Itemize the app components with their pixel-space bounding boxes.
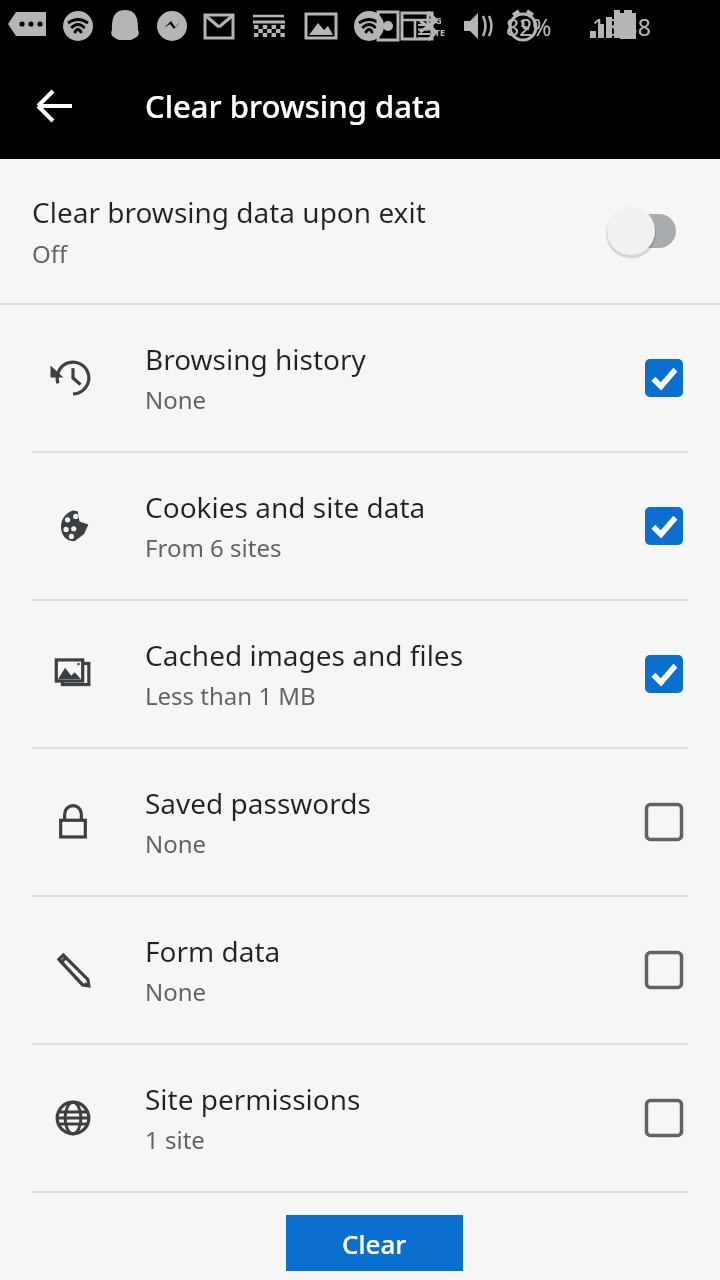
button[interactable]: Site permissions: [0, 1045, 720, 1191]
staticText: None: [145, 827, 207, 860]
staticText: Site permissions: [145, 1080, 361, 1118]
staticText: 82%: [506, 11, 552, 42]
button[interactable]: Back: [22, 73, 88, 139]
staticText: 4G: [430, 14, 442, 26]
staticText: Cached images and files: [145, 636, 464, 674]
button[interactable]: Saved passwords: [0, 749, 720, 895]
staticText: Browsing history: [145, 340, 366, 378]
button[interactable]: Cached images and files: [0, 601, 720, 747]
staticText: Saved passwords: [145, 784, 371, 822]
staticText: Form data: [145, 932, 281, 970]
staticText: 13:38: [592, 11, 651, 42]
staticText: Cookies and site data: [145, 488, 426, 526]
staticText: From 6 sites: [145, 531, 282, 564]
button[interactable]: Browsing history: [0, 305, 720, 451]
staticText: LTE: [430, 26, 446, 38]
staticText: Off: [32, 237, 68, 270]
staticText: None: [145, 383, 207, 416]
staticText: 1 site: [145, 1123, 205, 1156]
button[interactable]: Clear: [286, 1215, 463, 1271]
staticText: Clear browsing data upon exit: [32, 193, 426, 231]
staticText: Clear: [342, 1226, 407, 1261]
button[interactable]: Form data: [0, 897, 720, 1043]
button[interactable]: Cookies and site data: [0, 453, 720, 599]
staticText: None: [145, 975, 207, 1008]
staticText: Less than 1 MB: [145, 679, 316, 712]
button[interactable]: Clear browsing data upon exit: [0, 159, 720, 303]
staticText: Clear browsing data: [145, 85, 442, 127]
